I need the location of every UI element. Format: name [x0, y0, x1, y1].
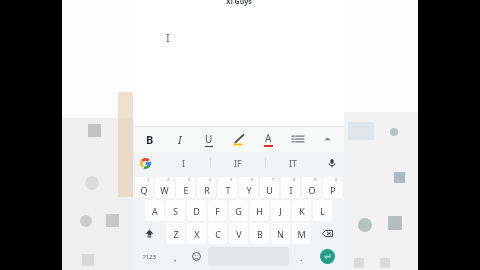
staticText: , [174, 251, 177, 263]
button[interactable]: Text color [257, 127, 279, 151]
button[interactable]: K [292, 200, 311, 221]
staticText: V [236, 228, 242, 240]
button[interactable]: F [208, 200, 227, 221]
button[interactable]: A [145, 200, 164, 221]
button[interactable]: 5 [218, 177, 237, 198]
staticText: IT [289, 157, 298, 169]
staticText: K [299, 205, 305, 217]
staticText: 6 [251, 177, 254, 182]
staticText: E [183, 184, 189, 196]
button[interactable]: 7 [260, 177, 279, 198]
staticText: W [160, 184, 169, 196]
staticText: F [215, 205, 220, 217]
button[interactable]: Shift [135, 223, 164, 244]
button[interactable]: L [313, 200, 332, 221]
button[interactable]: Google [133, 152, 157, 174]
staticText: I [289, 184, 293, 196]
button[interactable]: I [157, 152, 210, 174]
staticText: . [300, 251, 303, 263]
staticText: A [152, 205, 158, 217]
button[interactable]: X [187, 223, 206, 244]
staticText: 0 [335, 177, 338, 182]
staticText: S [173, 205, 178, 217]
button[interactable]: 6 [239, 177, 258, 198]
staticText: M [297, 228, 306, 240]
staticText: P [330, 184, 336, 196]
staticText: 9 [314, 177, 317, 182]
button[interactable]: H [250, 200, 269, 221]
button[interactable]: Bold [139, 127, 161, 151]
staticText: I [182, 157, 186, 169]
button[interactable]: Underline [198, 127, 220, 151]
button[interactable]: C [208, 223, 227, 244]
button[interactable]: Comma [166, 246, 185, 267]
button[interactable]: 9 [302, 177, 321, 198]
button[interactable]: Highlight [228, 127, 250, 151]
button[interactable]: Voice input [320, 152, 344, 174]
button[interactable]: 2 [155, 177, 174, 198]
staticText: Z [173, 228, 179, 240]
staticText: 8 [293, 177, 296, 182]
button[interactable]: S [166, 200, 185, 221]
button[interactable]: List [287, 127, 309, 151]
staticText: C [215, 228, 221, 240]
staticText: N [277, 228, 284, 240]
staticText: T [225, 184, 231, 196]
staticText: L [320, 205, 325, 217]
button[interactable]: More [316, 127, 338, 151]
staticText: 4 [209, 177, 212, 182]
button[interactable]: Italic [169, 127, 191, 151]
staticText: 2 [167, 177, 170, 182]
button[interactable]: B [250, 223, 269, 244]
staticText: I [178, 132, 182, 147]
button[interactable]: Symbols [135, 246, 164, 267]
staticText: B [257, 228, 263, 240]
staticText: I [166, 30, 170, 45]
button[interactable]: Emoji [187, 246, 205, 267]
staticText: 3 [188, 177, 191, 182]
button[interactable]: V [229, 223, 248, 244]
staticText: ?123 [143, 253, 156, 261]
staticText: G [235, 205, 242, 217]
staticText: 1 [147, 177, 150, 182]
staticText: A [265, 131, 272, 145]
button[interactable]: Z [166, 223, 185, 244]
staticText: U [266, 184, 273, 196]
button[interactable]: M [292, 223, 311, 244]
staticText: D [193, 205, 200, 217]
staticText: U [205, 132, 213, 146]
staticText: 5 [230, 177, 233, 182]
button[interactable]: N [271, 223, 290, 244]
button[interactable]: D [187, 200, 206, 221]
button[interactable]: 4 [197, 177, 216, 198]
staticText: B [146, 132, 154, 147]
staticText: Q [140, 184, 148, 196]
staticText: IF [234, 157, 242, 169]
staticText: R [204, 184, 210, 196]
staticText: O [308, 184, 316, 196]
staticText: Y [246, 184, 252, 196]
button[interactable]: 0 [323, 177, 342, 198]
staticText: J [279, 205, 282, 217]
button[interactable]: IF [211, 152, 265, 174]
button[interactable]: 8 [281, 177, 300, 198]
button[interactable]: G [229, 200, 248, 221]
staticText: Xi Guys [226, 0, 252, 7]
button[interactable]: IT [266, 152, 320, 174]
button[interactable]: 1 [135, 177, 153, 198]
button[interactable]: Enter [320, 249, 335, 264]
button[interactable]: Backspace [313, 223, 342, 244]
staticText: 7 [272, 177, 275, 182]
staticText: X [194, 228, 200, 240]
button[interactable]: 3 [176, 177, 195, 198]
staticText: H [256, 205, 263, 217]
button[interactable]: Period [292, 246, 310, 267]
button[interactable]: J [271, 200, 290, 221]
